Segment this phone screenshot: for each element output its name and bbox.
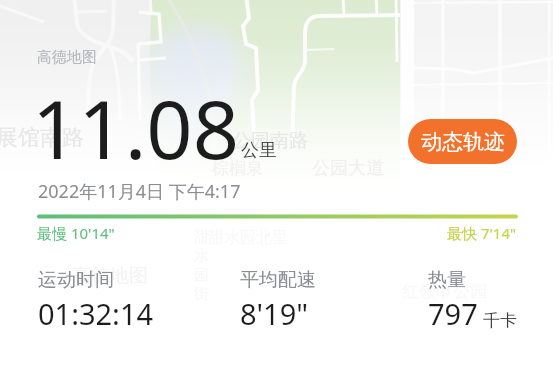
staticText: 公园南路 bbox=[232, 129, 308, 153]
staticText: 棕榈泉 bbox=[212, 158, 263, 179]
button[interactable]: 动态轨迹 bbox=[408, 119, 517, 164]
staticText: 热量 bbox=[428, 268, 466, 292]
staticText: 千卡 bbox=[483, 310, 517, 331]
staticText: 红领巾公园 bbox=[402, 281, 487, 302]
staticText: 高德地图 bbox=[72, 264, 148, 288]
staticText: 动态轨迹 bbox=[421, 129, 505, 155]
staticText: 2022年11月4日 下午4:17 bbox=[38, 179, 241, 204]
staticText: 最慢 10'14" bbox=[37, 223, 115, 243]
staticText: 公里 bbox=[241, 139, 277, 162]
staticText: 最快 7'14" bbox=[447, 223, 517, 243]
staticText: 公园大道 bbox=[312, 157, 384, 180]
staticText: 平均配速 bbox=[240, 268, 316, 292]
staticText: 01:32:14 bbox=[38, 294, 154, 333]
staticText: 会展馆南路 bbox=[0, 124, 84, 152]
staticText: 797 bbox=[428, 294, 478, 333]
staticText: 高德地图 bbox=[37, 48, 97, 67]
staticText: 8'19" bbox=[240, 294, 309, 333]
staticText: 11.08 bbox=[32, 72, 240, 182]
staticText: 运动时间 bbox=[38, 268, 114, 292]
